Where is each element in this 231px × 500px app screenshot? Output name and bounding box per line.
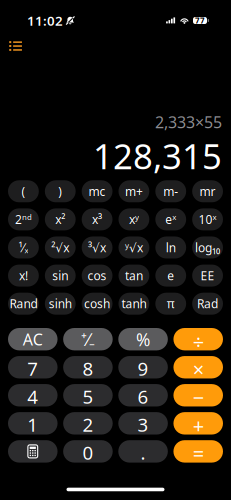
button[interactable]: ÷ bbox=[173, 328, 223, 350]
staticText: ¹⁄ₓ bbox=[18, 239, 28, 255]
button[interactable]: x² bbox=[45, 208, 76, 230]
staticText: 11:02 bbox=[27, 12, 63, 29]
button[interactable]: 8 bbox=[63, 356, 113, 378]
staticText: cosh bbox=[84, 296, 110, 312]
staticText: mc bbox=[89, 183, 106, 199]
staticText: x! bbox=[19, 268, 28, 283]
button[interactable]: ¹⁄ₓ bbox=[8, 236, 39, 258]
staticText: 2,333×55 bbox=[155, 111, 222, 133]
button[interactable]: m+ bbox=[118, 180, 149, 202]
button[interactable]: 9 bbox=[118, 356, 168, 378]
staticText: ²√x bbox=[51, 239, 69, 255]
button[interactable]: sinh bbox=[45, 293, 76, 315]
staticText: sin bbox=[52, 268, 68, 283]
button[interactable]: Calculator mode bbox=[3, 35, 29, 57]
staticText: 4 bbox=[27, 384, 38, 406]
staticText: e bbox=[167, 268, 174, 283]
staticText: cos bbox=[88, 268, 107, 283]
button[interactable]: − bbox=[173, 384, 223, 406]
staticText: 3 bbox=[138, 412, 149, 434]
staticText: EE bbox=[201, 268, 215, 283]
button[interactable]: Basic calculator bbox=[8, 440, 58, 463]
button[interactable]: ⁺⁄₋ bbox=[63, 328, 113, 350]
staticText: tanh bbox=[121, 296, 146, 312]
button[interactable]: + bbox=[173, 412, 223, 434]
staticText: 5 bbox=[82, 384, 93, 406]
button[interactable]: 7 bbox=[8, 356, 58, 378]
button[interactable]: e bbox=[155, 265, 186, 287]
staticText: ʸ√x bbox=[125, 239, 143, 255]
button[interactable]: π bbox=[155, 293, 186, 315]
staticText: sinh bbox=[49, 296, 72, 312]
button[interactable]: tan bbox=[118, 265, 149, 287]
button[interactable]: % bbox=[118, 328, 168, 350]
staticText: log₁₀ bbox=[195, 239, 220, 255]
staticText: ⁺⁄₋ bbox=[81, 328, 95, 350]
staticText: . bbox=[141, 440, 146, 463]
staticText: 9 bbox=[138, 356, 149, 378]
button[interactable]: mc bbox=[82, 180, 112, 202]
button[interactable]: = bbox=[173, 440, 223, 463]
staticText: Rad bbox=[197, 296, 218, 312]
button[interactable]: sin bbox=[45, 265, 76, 287]
staticText: % bbox=[136, 328, 150, 350]
staticText: 6 bbox=[138, 384, 149, 406]
button[interactable]: cos bbox=[82, 265, 112, 287]
button[interactable]: Rad bbox=[192, 293, 223, 315]
button[interactable]: ln bbox=[155, 236, 186, 258]
button[interactable]: log₁₀ bbox=[192, 236, 223, 258]
staticText: Rand bbox=[9, 296, 37, 312]
staticText: 7 bbox=[27, 356, 38, 378]
staticText: 0 bbox=[82, 440, 93, 463]
button[interactable]: 2ⁿᵈ bbox=[8, 208, 39, 230]
button[interactable]: 5 bbox=[63, 384, 113, 406]
button[interactable]: 6 bbox=[118, 384, 168, 406]
button[interactable]: × bbox=[173, 356, 223, 378]
staticText: x² bbox=[55, 211, 65, 227]
button[interactable]: 1 bbox=[8, 412, 58, 434]
staticText: − bbox=[193, 384, 204, 406]
staticText: x³ bbox=[92, 211, 102, 227]
button[interactable]: AC bbox=[8, 328, 58, 350]
staticText: π bbox=[167, 296, 175, 312]
button[interactable]: 2 bbox=[63, 412, 113, 434]
staticText: mr bbox=[200, 183, 216, 199]
staticText: 128,315 bbox=[93, 133, 222, 179]
staticText: × bbox=[193, 356, 204, 378]
button[interactable]: 3 bbox=[118, 412, 168, 434]
button[interactable]: eˣ bbox=[155, 208, 186, 230]
staticText: 2 bbox=[82, 412, 93, 434]
staticText: m+ bbox=[125, 183, 143, 199]
button[interactable]: 10ˣ bbox=[192, 208, 223, 230]
staticText: eˣ bbox=[165, 211, 176, 227]
button[interactable]: tanh bbox=[118, 293, 149, 315]
staticText: ³√x bbox=[88, 239, 106, 255]
staticText: 10ˣ bbox=[199, 211, 217, 227]
staticText: AC bbox=[23, 329, 43, 350]
button[interactable]: xʸ bbox=[118, 208, 149, 230]
button[interactable]: ²√x bbox=[45, 236, 76, 258]
button[interactable]: EE bbox=[192, 265, 223, 287]
button[interactable]: m- bbox=[155, 180, 186, 202]
button[interactable]: mr bbox=[192, 180, 223, 202]
button[interactable]: 0 bbox=[63, 440, 113, 463]
button[interactable]: 4 bbox=[8, 384, 58, 406]
staticText: 2ⁿᵈ bbox=[15, 211, 32, 227]
staticText: tan bbox=[125, 268, 143, 283]
button[interactable]: ( bbox=[8, 180, 39, 202]
button[interactable]: Rand bbox=[8, 293, 39, 315]
staticText: 77 bbox=[195, 15, 205, 26]
staticText: xʸ bbox=[129, 211, 139, 227]
button[interactable]: ) bbox=[45, 180, 76, 202]
button[interactable]: x³ bbox=[82, 208, 112, 230]
staticText: 8 bbox=[82, 356, 93, 378]
button[interactable]: x! bbox=[8, 265, 39, 287]
button[interactable]: . bbox=[118, 440, 168, 463]
staticText: + bbox=[193, 412, 204, 434]
button[interactable]: ʸ√x bbox=[118, 236, 149, 258]
staticText: = bbox=[193, 440, 204, 463]
button[interactable]: cosh bbox=[82, 293, 112, 315]
staticText: ) bbox=[58, 183, 62, 199]
button[interactable]: ³√x bbox=[82, 236, 112, 258]
staticText: ln bbox=[166, 239, 176, 255]
